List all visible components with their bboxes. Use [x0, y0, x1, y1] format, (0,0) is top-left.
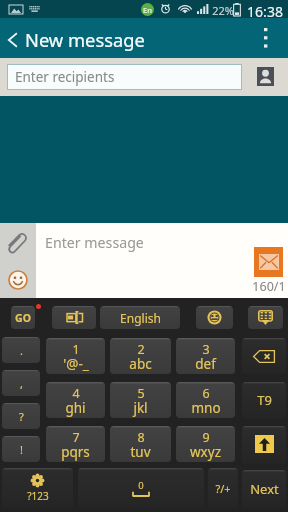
staticText: ! [20, 442, 23, 457]
staticText: Next [250, 480, 279, 498]
staticText: 4 [72, 385, 80, 402]
staticText: Enter message [45, 233, 144, 252]
button[interactable]: Contacts [257, 67, 274, 86]
staticText: 22% [212, 3, 234, 18]
button[interactable]: Key 8 [110, 426, 171, 462]
button[interactable]: Next [242, 470, 286, 508]
button[interactable]: Key 6 [176, 382, 235, 418]
button[interactable]: Space [78, 468, 204, 508]
button[interactable]: More options [254, 20, 278, 56]
staticText: wxyz [190, 443, 221, 461]
button[interactable]: Backspace [242, 338, 286, 374]
staticText: T9 [257, 391, 272, 409]
staticText: 2 [137, 341, 145, 358]
button[interactable]: Attach [0, 224, 35, 262]
staticText: 7 [72, 429, 80, 446]
staticText: mno [191, 399, 221, 417]
staticText: tuv [130, 443, 151, 461]
button[interactable]: Key 2 [110, 338, 171, 374]
button[interactable]: Enter recipients [7, 64, 242, 90]
button[interactable]: GO [11, 306, 35, 329]
staticText: ?/+ [215, 481, 231, 496]
button[interactable]: Symbols [208, 468, 238, 508]
button[interactable]: Key ? [2, 403, 40, 429]
staticText: jkl [133, 399, 148, 417]
button[interactable]: Keyboard layout [52, 306, 96, 329]
staticText: GO [15, 311, 31, 325]
staticText: 160/1 [250, 278, 288, 295]
button[interactable]: Emoji [0, 262, 35, 297]
button[interactable]: Key 3 [176, 338, 235, 374]
staticText: Enter recipients [15, 68, 115, 86]
button[interactable]: Shift [242, 426, 286, 464]
staticText: ghi [65, 399, 86, 417]
button[interactable]: T9 [242, 382, 286, 418]
staticText: , [20, 376, 23, 391]
button[interactable]: Hide keyboard [248, 306, 283, 329]
button[interactable]: Key 5 [110, 382, 171, 418]
button[interactable]: Symbols [2, 468, 73, 508]
button[interactable]: Back [0, 23, 25, 56]
button[interactable]: Key , [2, 370, 40, 396]
button[interactable]: Emoticons [196, 306, 233, 329]
staticText: abc [129, 355, 152, 373]
staticText: 9 [202, 429, 210, 446]
staticText: 3 [202, 341, 210, 358]
staticText: ?123 [27, 489, 49, 503]
staticText: 5 [137, 385, 145, 402]
staticText: '@-_ [63, 355, 89, 373]
staticText: New message [25, 27, 145, 52]
staticText: En [143, 5, 152, 15]
button[interactable]: Key 4 [46, 382, 105, 418]
button[interactable]: Key ! [2, 436, 40, 462]
staticText: 8 [137, 429, 145, 446]
staticText: English [120, 310, 161, 326]
button[interactable]: Key 9 [176, 426, 235, 462]
staticText: 6 [202, 385, 210, 402]
button[interactable]: Send [254, 247, 283, 277]
staticText: ? [19, 409, 24, 424]
staticText: . [20, 343, 23, 358]
staticText: 16:38 [247, 2, 283, 21]
button[interactable]: Key 7 [46, 426, 105, 462]
staticText: def [195, 355, 216, 373]
button[interactable]: English [100, 306, 180, 329]
staticText: 1 [72, 341, 80, 358]
staticText: pqrs [61, 443, 90, 461]
button[interactable]: Key 1 [46, 338, 105, 374]
button[interactable]: Key . [2, 337, 40, 363]
staticText: 0 [138, 479, 144, 492]
